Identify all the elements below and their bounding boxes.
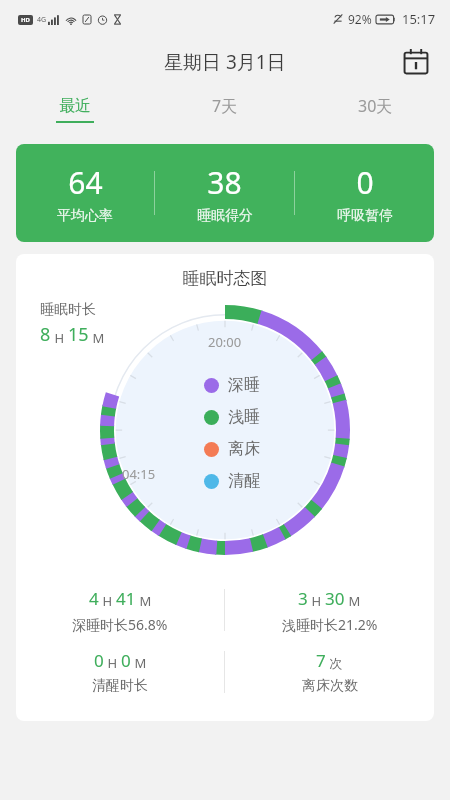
staticText: 深睡 [228,375,260,395]
staticText: 呼吸暂停 [337,207,393,225]
staticText: 睡眠时态图 [16,268,434,289]
staticText: H [308,592,325,610]
staticText: 15 [68,322,89,347]
staticText: 次 [326,654,343,672]
staticText: 深睡时长56.8% [72,615,168,634]
button[interactable]: 0 [16,649,224,695]
staticText: 星期日 3月1日 [164,49,286,75]
button[interactable]: 30天 [300,86,450,132]
staticText: 64 [68,162,103,203]
staticText: H [99,592,116,610]
staticText: 7天 [212,95,238,117]
staticText: 清醒时长 [92,677,148,695]
staticText: 睡眠得分 [197,207,253,225]
staticText: 8 [40,322,51,347]
staticText: 30天 [358,95,393,117]
staticText: 4G [37,15,47,25]
staticText: 睡眠时长 [40,301,96,319]
button[interactable]: 最近 [0,86,150,132]
staticText: 30 [325,587,345,610]
staticText: M [131,654,147,672]
staticText: 04:15 [122,465,156,483]
staticText: M [345,592,361,610]
button[interactable]: 64 [16,144,434,242]
staticText: 浅睡时长21.2% [282,615,378,634]
staticText: 最近 [59,96,91,116]
staticText: 92% [348,11,372,27]
staticText: 4 [89,587,99,610]
staticText: 7 [316,649,326,672]
staticText: HD [21,16,30,24]
staticText: 平均心率 [57,207,113,225]
staticText: 0 [356,162,374,203]
button[interactable]: 4 [16,587,224,634]
staticText: 38 [207,162,242,203]
staticText: 20:00 [208,333,242,351]
staticText: M [89,329,105,347]
staticText: 清醒 [228,471,260,491]
staticText: 0 [121,649,131,672]
staticText: 41 [116,587,136,610]
staticText: 离床次数 [302,677,358,695]
staticText: 离床 [228,439,260,459]
staticText: M [136,592,152,610]
staticText: 3 [298,587,308,610]
staticText: 0 [94,649,104,672]
staticText: 15:17 [402,10,436,28]
button[interactable]: 7 [225,649,434,695]
staticText: H [104,654,121,672]
button[interactable]: 7天 [150,86,300,132]
button[interactable]: 3 [225,587,434,634]
button[interactable]: Calendar [396,42,436,82]
staticText: H [51,329,68,347]
staticText: 浅睡 [228,407,260,427]
